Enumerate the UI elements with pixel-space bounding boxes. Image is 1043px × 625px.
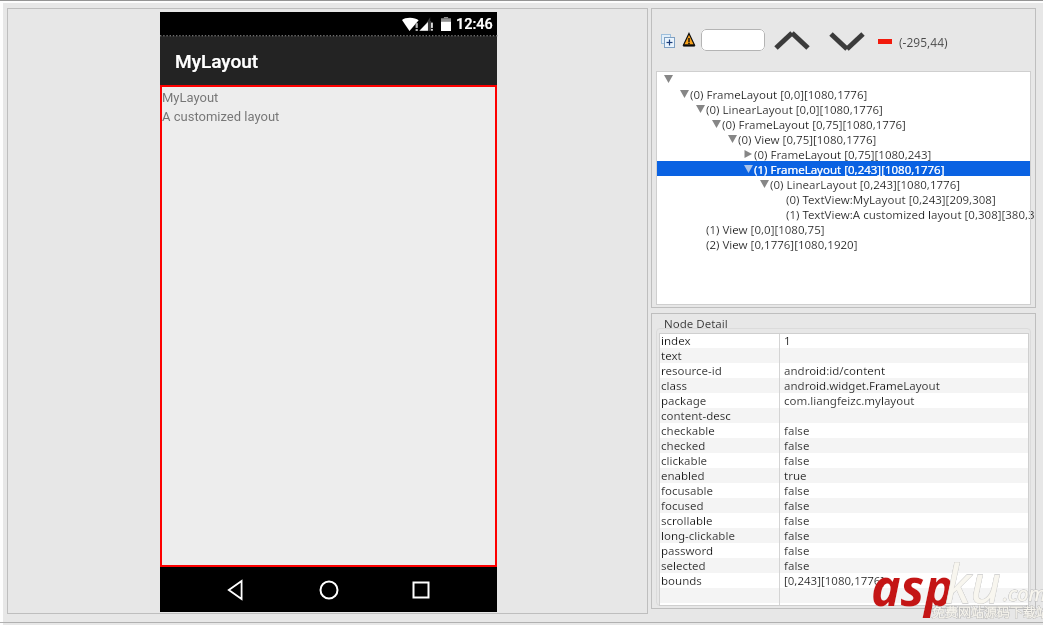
button[interactable]: (0) FrameLayout [0,75][1080,1776] bbox=[656, 116, 1031, 131]
staticText: A customized layout bbox=[162, 109, 280, 124]
staticText: 免费网站源码下载站 bbox=[932, 602, 1043, 621]
staticText: android.widget.FrameLayout bbox=[784, 378, 940, 393]
staticText: scrollable bbox=[661, 513, 713, 528]
staticText: MyLayout bbox=[162, 90, 219, 105]
button[interactable]: Next node bbox=[827, 29, 867, 53]
button[interactable]: clickable bbox=[659, 453, 1029, 468]
staticText: checked bbox=[661, 438, 706, 453]
button[interactable]: (0) View [0,75][1080,1776] bbox=[656, 131, 1031, 146]
staticText: class bbox=[661, 378, 687, 393]
button[interactable] bbox=[656, 71, 1031, 86]
button[interactable]: text bbox=[659, 348, 1029, 363]
button[interactable]: focused bbox=[659, 498, 1029, 513]
button[interactable]: selected bbox=[659, 558, 1029, 573]
staticText: (0) FrameLayout [0,75][1080,243] bbox=[754, 147, 932, 162]
staticText: [0,243][1080,1776] bbox=[784, 573, 885, 588]
button[interactable]: Home bbox=[312, 573, 346, 607]
staticText: 免费网站源码下载站 bbox=[932, 602, 1043, 621]
button[interactable]: Back bbox=[219, 573, 253, 607]
button[interactable]: checkable bbox=[659, 423, 1029, 438]
button[interactable]: scrollable bbox=[659, 513, 1029, 528]
staticText: focusable bbox=[661, 483, 714, 498]
staticText: ku bbox=[945, 547, 1001, 618]
staticText: selected bbox=[661, 558, 706, 573]
button[interactable]: Warnings bbox=[683, 33, 695, 47]
button[interactable]: package bbox=[659, 393, 1029, 408]
button[interactable]: (2) View [0,1776][1080,1920] bbox=[656, 236, 1031, 251]
staticText: false bbox=[784, 483, 810, 498]
staticText: false bbox=[784, 453, 810, 468]
button[interactable]: Add node bbox=[661, 34, 676, 48]
button[interactable]: long-clickable bbox=[659, 528, 1029, 543]
button[interactable]: (1) FrameLayout [0,243][1080,1776] bbox=[656, 161, 1031, 176]
staticText: (1) FrameLayout [0,243][1080,1776] bbox=[754, 162, 945, 177]
button[interactable]: Previous node bbox=[772, 29, 812, 53]
staticText: ku bbox=[945, 547, 1001, 618]
staticText: android:id/content bbox=[784, 363, 886, 378]
staticText: asp bbox=[871, 553, 955, 621]
button[interactable]: bounds bbox=[659, 573, 1029, 588]
button[interactable]: Search field bbox=[701, 29, 765, 51]
button[interactable]: Recents bbox=[404, 573, 438, 607]
staticText: false bbox=[784, 513, 810, 528]
staticText: bounds bbox=[661, 573, 702, 588]
staticText: resource-id bbox=[661, 363, 722, 378]
staticText: index bbox=[661, 333, 691, 348]
staticText: (1) View [0,0][1080,75] bbox=[706, 222, 825, 237]
staticText: 12:46 bbox=[456, 16, 493, 33]
staticText: enabled bbox=[661, 468, 705, 483]
staticText: .com bbox=[1003, 580, 1043, 607]
staticText: .com bbox=[1003, 580, 1043, 607]
staticText: clickable bbox=[661, 453, 708, 468]
staticText: false bbox=[784, 498, 810, 513]
button[interactable]: (0) TextView:MyLayout [0,243][209,308] bbox=[656, 191, 1031, 206]
button[interactable]: index bbox=[659, 333, 1029, 348]
staticText: (0) TextView:MyLayout [0,243][209,308] bbox=[786, 192, 996, 207]
button[interactable]: enabled bbox=[659, 468, 1029, 483]
button[interactable]: (0) FrameLayout [0,0][1080,1776] bbox=[656, 86, 1031, 101]
staticText: false bbox=[784, 438, 810, 453]
staticText: package bbox=[661, 393, 707, 408]
staticText: (0) FrameLayout [0,75][1080,1776] bbox=[722, 117, 906, 132]
button[interactable]: password bbox=[659, 543, 1029, 558]
staticText: false bbox=[784, 528, 810, 543]
staticText: focused bbox=[661, 498, 704, 513]
button[interactable]: (0) FrameLayout [0,75][1080,243] bbox=[656, 146, 1031, 161]
staticText: com.liangfeizc.mylayout bbox=[784, 393, 915, 408]
staticText: (0) View [0,75][1080,1776] bbox=[738, 132, 877, 147]
button[interactable]: resource-id bbox=[659, 363, 1029, 378]
staticText: password bbox=[661, 543, 714, 558]
staticText: (0) LinearLayout [0,243][1080,1776] bbox=[770, 177, 961, 192]
staticText: Node Detail bbox=[664, 316, 728, 332]
button[interactable]: (0) LinearLayout [0,243][1080,1776] bbox=[656, 176, 1031, 191]
staticText: false bbox=[784, 423, 810, 438]
staticText: MyLayout bbox=[175, 50, 259, 72]
button[interactable]: checked bbox=[659, 438, 1029, 453]
staticText: 1 bbox=[784, 333, 791, 348]
staticText: false bbox=[784, 558, 810, 573]
staticText: (1) TextView:A customized layout [0,308]… bbox=[786, 207, 1035, 222]
staticText: (-295,44) bbox=[899, 34, 948, 50]
staticText: content-desc bbox=[661, 408, 731, 423]
staticText: text bbox=[661, 348, 682, 363]
staticText: long-clickable bbox=[661, 528, 735, 543]
staticText: (0) FrameLayout [0,0][1080,1776] bbox=[690, 87, 868, 102]
staticText: checkable bbox=[661, 423, 715, 438]
button[interactable]: content-desc bbox=[659, 408, 1029, 423]
staticText: false bbox=[784, 543, 810, 558]
button[interactable]: class bbox=[659, 378, 1029, 393]
staticText: (0) LinearLayout [0,0][1080,1776] bbox=[706, 102, 883, 117]
button[interactable]: (1) View [0,0][1080,75] bbox=[656, 221, 1031, 236]
staticText: true bbox=[784, 468, 807, 483]
button[interactable]: (0) LinearLayout [0,0][1080,1776] bbox=[656, 101, 1031, 116]
staticText: (2) View [0,1776][1080,1920] bbox=[706, 237, 858, 252]
button[interactable]: (1) TextView:A customized layout [0,308]… bbox=[656, 206, 1031, 221]
button[interactable]: focusable bbox=[659, 483, 1029, 498]
